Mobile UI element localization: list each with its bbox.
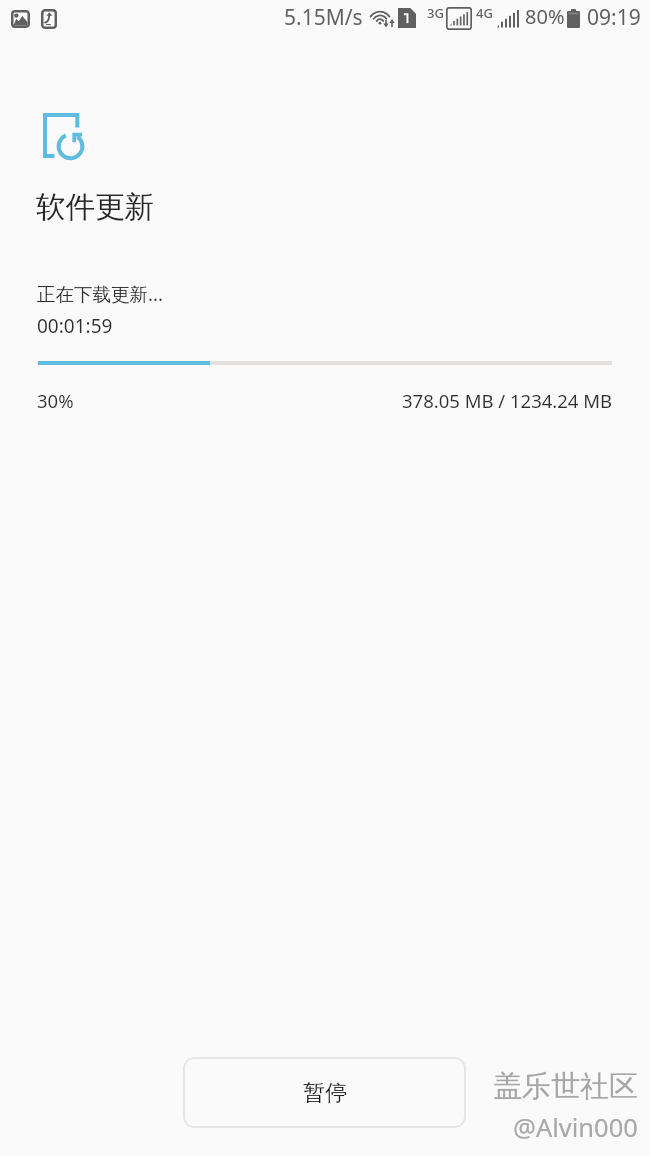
staticText: 80% xyxy=(525,3,565,30)
button[interactable]: 暂停 xyxy=(183,1057,466,1128)
staticText: 3G xyxy=(427,4,444,22)
staticText: 5.15M/s xyxy=(284,3,363,32)
staticText: 00:01:59 xyxy=(37,313,113,339)
staticText: 暂停 xyxy=(303,1079,347,1107)
staticText: 正在下载更新... xyxy=(37,281,163,306)
staticText: 378.05 MB / 1234.24 MB xyxy=(402,388,613,413)
staticText: 30% xyxy=(37,388,74,413)
staticText: @Alvin000 xyxy=(513,1110,638,1145)
staticText: 09:19 xyxy=(587,3,641,32)
staticText: 软件更新 xyxy=(36,189,154,226)
staticText: 盖乐世社区 xyxy=(493,1068,638,1105)
staticText: 4G xyxy=(476,4,493,22)
